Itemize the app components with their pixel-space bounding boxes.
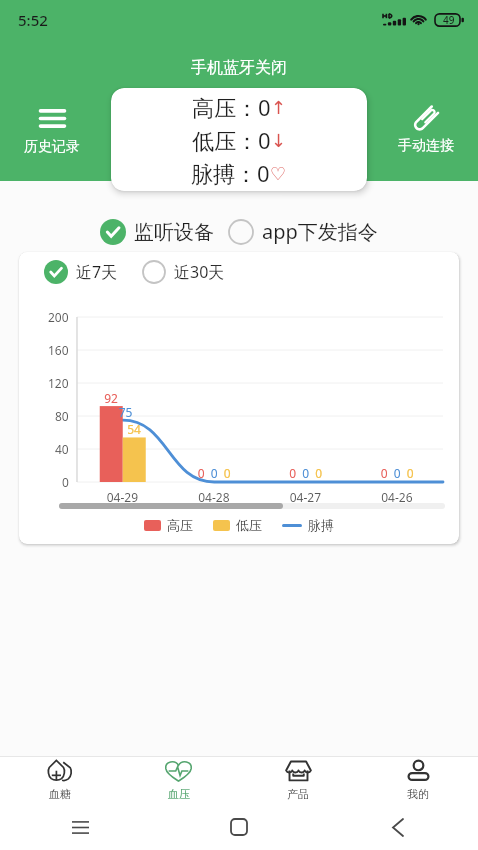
button[interactable]: 我的 [358,759,478,801]
staticText: ↑ [271,97,287,118]
button[interactable]: 产品 [238,759,358,801]
button[interactable]: 近7天 [44,257,118,287]
staticText: 近30天 [174,261,225,283]
button[interactable]: Home [218,806,260,848]
staticText: 高压：0 [192,92,271,122]
button[interactable]: 手动连接 [386,104,466,155]
staticText: 49 [443,13,455,27]
staticText: 手动连接 [398,137,454,155]
staticText: 历史记录 [24,138,80,156]
staticText: 低压：0 [192,125,271,155]
staticText: 产品 [287,787,309,801]
staticText: 高压 [167,517,193,533]
staticText: 手机蓝牙关闭 [191,58,287,78]
staticText: 脉搏：0 [191,158,270,188]
staticText: ♡ [270,163,287,184]
staticText: 血糖 [49,787,71,801]
staticText: 5:52 [18,10,48,30]
staticText: app下发指令 [262,218,378,245]
staticText: 监听设备 [134,220,214,245]
staticText: ↓ [271,130,287,151]
button[interactable]: 监听设备 [100,216,214,248]
button[interactable]: 近30天 [142,257,225,287]
staticText: 近7天 [76,261,118,283]
button[interactable]: Back [377,806,419,848]
staticText: 我的 [407,787,429,801]
button[interactable]: 血压 [119,759,238,801]
button[interactable]: 血糖 [0,759,119,801]
button[interactable]: Recents [59,806,101,848]
staticText: 低压 [236,517,262,533]
button[interactable]: app下发指令 [228,215,378,248]
button[interactable]: 历史记录 [12,109,92,156]
staticText: 血压 [168,787,190,801]
staticText: 脉搏 [308,517,334,533]
